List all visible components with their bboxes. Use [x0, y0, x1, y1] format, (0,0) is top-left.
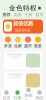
staticText: 金色特权 — [9, 4, 37, 12]
staticText: 美食 — [13, 12, 21, 17]
button[interactable]: 外卖 — [3, 36, 13, 48]
staticText: 首页 — [2, 95, 10, 100]
staticText: 购物车 — [24, 93, 32, 100]
button[interactable]: 生鲜 — [23, 12, 34, 17]
staticText: 超值优惠 — [13, 20, 33, 27]
button[interactable]: 推荐 — [1, 12, 12, 17]
button[interactable]: 生鲜 — [13, 36, 23, 48]
button[interactable]: 超市 — [34, 12, 45, 17]
button[interactable] — [4, 51, 42, 69]
staticText: 生鲜 — [14, 43, 22, 48]
button[interactable]: 我的 — [34, 90, 45, 100]
button[interactable]: 超市 — [23, 36, 33, 48]
button[interactable]: 分类 — [12, 90, 23, 100]
button[interactable]: 更多 — [33, 36, 43, 48]
staticText: 限时秒杀 — [15, 28, 31, 33]
staticText: 生鲜 — [24, 12, 32, 17]
button[interactable]: 购物车 — [23, 90, 34, 100]
button[interactable]: 首页 — [1, 90, 12, 100]
staticText: 我的 — [35, 95, 43, 100]
button[interactable] — [4, 71, 42, 89]
button[interactable]: 超值优惠 — [3, 19, 43, 33]
staticText: 超市 — [35, 12, 43, 17]
staticText: 推荐 — [2, 12, 10, 17]
staticText: 更多 — [34, 43, 42, 48]
staticText: 外卖 — [4, 43, 12, 48]
staticText: 超市 — [24, 43, 32, 48]
button[interactable]: 美食 — [12, 12, 23, 17]
button[interactable]: Profile — [38, 6, 41, 9]
staticText: 分类 — [13, 95, 21, 100]
